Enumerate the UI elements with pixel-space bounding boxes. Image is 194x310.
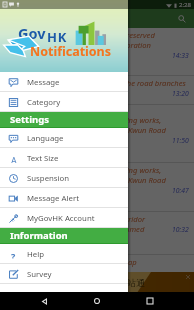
staticText: Traffic notice: the eastbound bus corrid…	[6, 214, 146, 224]
staticText: 13:20	[172, 89, 189, 98]
staticText: Temporary traffic arrangement: paving wo…	[6, 165, 162, 175]
staticText: near the bus terminus in Kwun Tong	[6, 185, 128, 195]
staticText: Information	[10, 229, 68, 242]
button[interactable]: ?	[0, 244, 128, 264]
button[interactable]: A	[0, 148, 128, 168]
staticText: A	[11, 154, 17, 163]
button[interactable]: Search	[175, 12, 189, 26]
button[interactable]: Information	[0, 228, 128, 244]
staticText: and the reserved e-ticket can be	[6, 50, 113, 60]
button[interactable]: Transport Department	[0, 105, 194, 163]
button[interactable]: Home	[88, 292, 106, 310]
staticText: MyGovHK Account	[27, 213, 95, 224]
staticText: ?	[11, 250, 16, 259]
staticText: 站通	[127, 277, 145, 288]
staticText: for this trip was issued by MTR Corporat…	[6, 40, 151, 50]
staticText: near the bus terminus in Kwun Tong	[6, 135, 128, 145]
button[interactable]: Category	[0, 92, 128, 112]
staticText: 11:50	[172, 136, 189, 145]
staticText: Language	[27, 133, 64, 144]
button[interactable]: Traffic notice: the road is closed at Ha…	[0, 255, 194, 285]
staticText: Help	[27, 249, 44, 260]
staticText: 2:28	[179, 1, 191, 9]
button[interactable]: Temporary traffic arrangement: paving wo…	[0, 163, 194, 212]
staticText: Temporary traffic arrangement: paving wo…	[6, 115, 162, 125]
staticText: Traffic notice at the junction where the…	[6, 78, 186, 88]
button[interactable]: Survey	[0, 264, 128, 284]
button[interactable]: Reminder: The train ticket you have rese…	[0, 28, 194, 76]
staticText: Survey	[27, 269, 52, 280]
staticText: Message Alert	[27, 193, 79, 204]
staticText: 10:32	[172, 225, 189, 234]
button[interactable]: 站通	[0, 272, 194, 292]
staticText: Notifications	[30, 43, 112, 60]
button[interactable]: Message	[0, 72, 128, 92]
staticText: 14:33	[172, 51, 189, 60]
staticText: Text Size	[27, 153, 59, 164]
button[interactable]: Traffic notice at the junction where the…	[0, 76, 194, 105]
button[interactable]: Back	[35, 292, 53, 310]
button[interactable]: Message Alert	[0, 188, 128, 208]
staticText: 10:47	[172, 186, 189, 195]
staticText: Gov	[18, 23, 46, 43]
button[interactable]: Suspension	[0, 168, 128, 188]
staticText: at the junction of Hip Wo Street and Kwu…	[6, 175, 166, 185]
button[interactable]: MyGovHK Account	[0, 208, 128, 228]
staticText: Message	[27, 77, 60, 88]
button[interactable]: Close ad	[184, 273, 192, 281]
staticText: at the junction of Hip Wo Street and Kwu…	[6, 125, 166, 135]
staticText: HK	[47, 28, 68, 46]
staticText: Reminder: The train ticket you have rese…	[6, 30, 155, 40]
button[interactable]: Settings	[0, 112, 128, 128]
button[interactable]: Recents	[141, 292, 159, 310]
staticText: Traffic notice: the road is closed at Ha…	[6, 257, 137, 267]
button[interactable]: Language	[0, 128, 128, 148]
staticText: Transport Department	[6, 107, 70, 115]
staticText: Settings	[10, 113, 49, 126]
staticText: Category	[27, 97, 61, 108]
staticText: between the two stops has been resumed	[6, 224, 145, 234]
button[interactable]: Traffic notice: the eastbound bus corrid…	[0, 212, 194, 255]
staticText: Suspension	[27, 173, 70, 184]
